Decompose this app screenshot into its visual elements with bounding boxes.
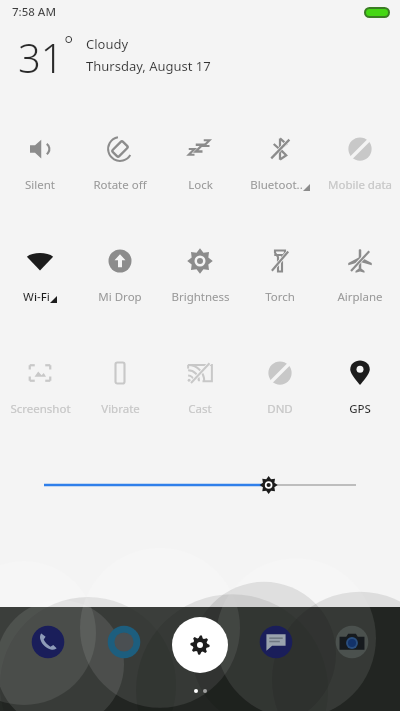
staticText: DND xyxy=(267,401,293,417)
button[interactable]: Phone xyxy=(21,615,75,669)
button[interactable]: Silent xyxy=(0,134,80,193)
staticText: Brightness xyxy=(171,289,230,305)
staticText: 7:58 AM xyxy=(12,4,56,20)
button[interactable]: Camera xyxy=(325,615,379,669)
staticText: Mobile data xyxy=(328,177,392,193)
staticText: Wi-Fi xyxy=(23,289,50,305)
staticText: Vibrate xyxy=(101,401,140,417)
staticText: Screenshot xyxy=(10,401,71,417)
button[interactable]: Cast xyxy=(160,358,240,417)
staticText: Mi Drop xyxy=(98,289,142,305)
staticText: Lock xyxy=(188,177,213,193)
button[interactable]: Wi-Fi xyxy=(0,246,80,305)
staticText: Cast xyxy=(188,401,212,417)
button[interactable]: Torch xyxy=(240,246,320,305)
button[interactable]: GPS xyxy=(320,358,400,417)
button[interactable]: Browser xyxy=(97,615,151,669)
button[interactable]: Settings xyxy=(172,617,228,673)
button[interactable]: Messaging xyxy=(249,615,303,669)
button[interactable]: Lock xyxy=(160,134,240,193)
staticText: Bluetoot.. xyxy=(250,177,303,193)
button[interactable]: Brightness xyxy=(160,246,240,305)
button[interactable]: Rotate off xyxy=(80,134,160,193)
staticText: GPS xyxy=(349,401,371,417)
staticText: Rotate off xyxy=(93,177,147,193)
button[interactable]: Airplane xyxy=(320,246,400,305)
staticText: Thursday, August 17 xyxy=(86,57,211,75)
staticText: Airplane xyxy=(337,289,383,305)
staticText: Silent xyxy=(25,177,55,193)
button[interactable]: DND xyxy=(240,358,320,417)
staticText: Cloudy xyxy=(86,35,129,53)
staticText: Torch xyxy=(265,289,295,305)
staticText: 31 xyxy=(18,30,64,84)
button[interactable]: Mi Drop xyxy=(80,246,160,305)
button[interactable]: Brightness slider xyxy=(44,467,356,503)
button[interactable]: Screenshot xyxy=(0,358,80,417)
staticText: ° xyxy=(64,28,74,58)
button[interactable]: Bluetoot.. xyxy=(240,134,320,193)
button[interactable]: Vibrate xyxy=(80,358,160,417)
button[interactable]: Mobile data xyxy=(320,134,400,193)
